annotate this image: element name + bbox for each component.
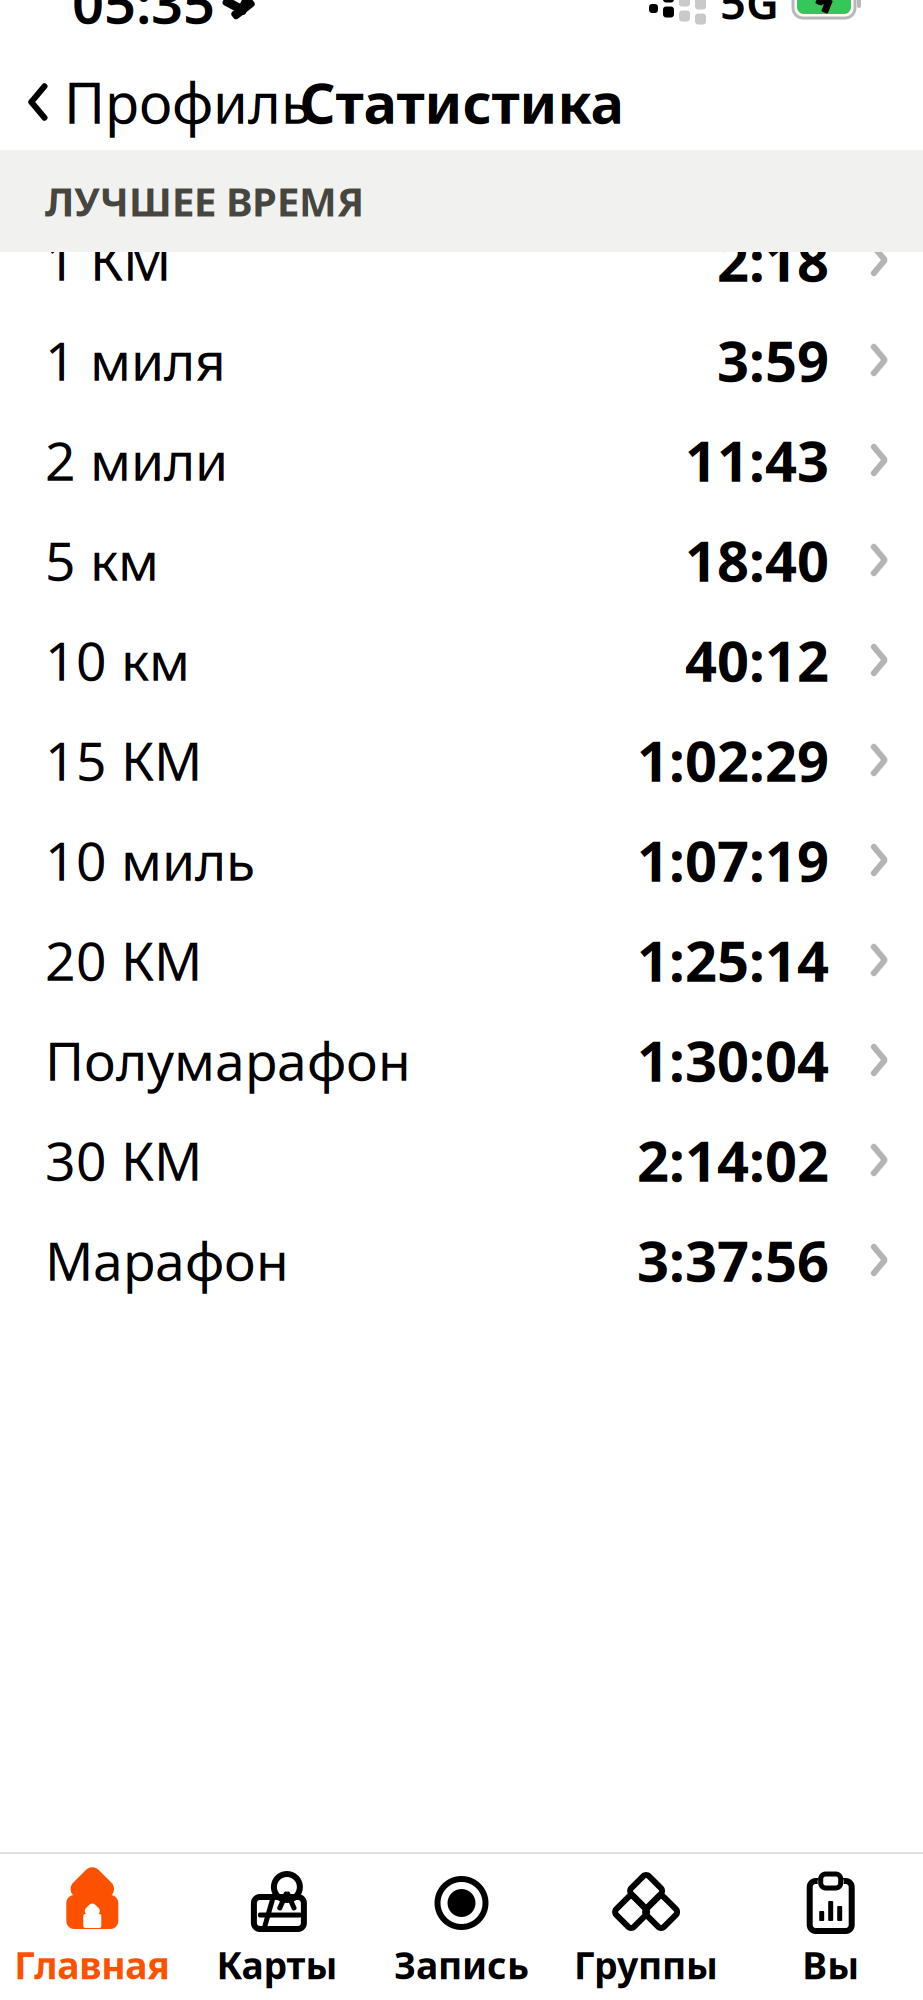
staticText: 1:07:19 bbox=[637, 823, 829, 897]
button[interactable]: Главная bbox=[0, 1872, 185, 1994]
staticText: 30 КМ bbox=[45, 1125, 202, 1195]
button[interactable]: 5 км bbox=[0, 510, 923, 610]
staticText: Статистика bbox=[299, 65, 623, 139]
staticText: 1/2 мили bbox=[45, 145, 279, 215]
staticText: 10 миль bbox=[45, 825, 255, 895]
staticText: Карты bbox=[216, 1940, 337, 1990]
staticText: 2 мили bbox=[45, 425, 228, 495]
staticText: 3:37:56 bbox=[637, 1223, 829, 1297]
staticText: Профиль bbox=[64, 65, 312, 139]
staticText: 15 КМ bbox=[45, 725, 202, 795]
staticText: Главная bbox=[14, 1940, 170, 1990]
button[interactable]: Полумарафон bbox=[0, 1010, 923, 1110]
button[interactable]: Запись bbox=[369, 1872, 554, 1994]
staticText: 1:25:14 bbox=[637, 923, 829, 997]
staticText: Запись bbox=[394, 1940, 529, 1990]
staticText: 1 миля bbox=[45, 325, 226, 395]
staticText: 40:12 bbox=[685, 623, 829, 697]
staticText: 11:43 bbox=[685, 423, 829, 497]
button[interactable]: 10 миль bbox=[0, 810, 923, 910]
button[interactable]: 1 миля bbox=[0, 310, 923, 410]
staticText: 1 КМ bbox=[45, 225, 171, 295]
button[interactable]: 15 КМ bbox=[0, 710, 923, 810]
button[interactable]: 2 мили bbox=[0, 410, 923, 510]
button[interactable]: Вы bbox=[738, 1872, 923, 1994]
button[interactable]: Группы bbox=[554, 1872, 738, 1994]
staticText: 5 км bbox=[45, 525, 159, 595]
staticText: 10 км bbox=[45, 625, 190, 695]
staticText: 18:40 bbox=[685, 523, 829, 597]
button[interactable]: 20 КМ bbox=[0, 910, 923, 1010]
staticText: ЛУЧШЕЕ ВРЕМЯ bbox=[45, 174, 364, 227]
button[interactable]: 10 км bbox=[0, 610, 923, 710]
button[interactable]: Карты bbox=[185, 1872, 369, 1994]
staticText: 20 КМ bbox=[45, 925, 202, 995]
staticText: 1:30:04 bbox=[637, 1023, 829, 1097]
staticText: 1:56 bbox=[717, 143, 829, 217]
staticText: Марафон bbox=[45, 1225, 289, 1295]
staticText: 2:14:02 bbox=[637, 1123, 829, 1197]
staticText: Группы bbox=[574, 1940, 718, 1990]
button[interactable]: Профиль bbox=[0, 56, 328, 148]
staticText: 3:59 bbox=[717, 323, 829, 397]
staticText: 05:35 bbox=[72, 0, 215, 39]
staticText: 5G bbox=[720, 0, 779, 32]
staticText: 2:18 bbox=[717, 223, 829, 297]
staticText: Вы bbox=[802, 1940, 859, 1990]
staticText: Полумарафон bbox=[45, 1025, 411, 1095]
button[interactable]: 1 КМ bbox=[0, 210, 923, 310]
button[interactable]: Марафон bbox=[0, 1210, 923, 1310]
button[interactable]: 30 КМ bbox=[0, 1110, 923, 1210]
staticText: 1:02:29 bbox=[637, 723, 829, 797]
